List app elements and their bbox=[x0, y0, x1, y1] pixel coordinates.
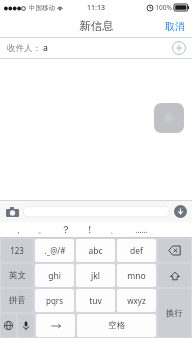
staticText: 100% bbox=[155, 3, 172, 12]
button[interactable]: mno bbox=[117, 264, 156, 287]
button[interactable]: tuv bbox=[76, 289, 115, 312]
staticText: …… bbox=[135, 224, 148, 235]
staticText: 123 bbox=[10, 245, 24, 256]
button[interactable]: Camera bbox=[5, 205, 19, 219]
staticText: 英文 bbox=[9, 270, 26, 281]
button[interactable]: …… bbox=[126, 222, 156, 237]
staticText: abc bbox=[88, 245, 103, 257]
button[interactable]: Send bbox=[174, 205, 187, 218]
button[interactable]: 拼音 bbox=[1, 289, 33, 312]
button[interactable]: Add contact bbox=[172, 41, 186, 55]
button[interactable]: 、 bbox=[102, 222, 126, 237]
button[interactable]: ._@/# bbox=[35, 239, 74, 262]
button[interactable]: 空格 bbox=[77, 314, 156, 337]
button[interactable]: ， bbox=[6, 222, 30, 237]
button[interactable]: 123 bbox=[1, 239, 33, 262]
staticText: jkl bbox=[91, 270, 100, 282]
staticText: 拼音 bbox=[9, 295, 26, 306]
button[interactable]: jkl bbox=[76, 264, 115, 287]
staticText: tuv bbox=[89, 295, 102, 307]
staticText: ._@/# bbox=[44, 245, 66, 256]
staticText: pqrs bbox=[46, 295, 63, 306]
button[interactable]: Voice input bbox=[18, 314, 34, 337]
staticText: 收件人： bbox=[7, 43, 41, 54]
staticText: 、 bbox=[110, 225, 118, 235]
staticText: 换行 bbox=[166, 308, 183, 319]
staticText: 取消 bbox=[165, 20, 185, 33]
button[interactable]: abc bbox=[76, 239, 115, 262]
staticText: 。 bbox=[38, 225, 46, 235]
button[interactable]: Next bbox=[36, 314, 75, 337]
staticText: mno bbox=[127, 270, 146, 282]
staticText: ， bbox=[14, 225, 22, 235]
staticText: ？ bbox=[61, 223, 71, 236]
button[interactable]: def bbox=[117, 239, 156, 262]
staticText: 11:13 bbox=[87, 3, 105, 13]
staticText: 中国移动 bbox=[29, 4, 55, 12]
button[interactable]: pqrs bbox=[35, 289, 74, 312]
button[interactable]: ghi bbox=[35, 264, 74, 287]
button[interactable]: Switch keyboard bbox=[1, 314, 16, 337]
staticText: def bbox=[130, 245, 143, 257]
button[interactable]: 换行 bbox=[158, 289, 191, 337]
button[interactable]: ？ bbox=[54, 222, 78, 237]
button[interactable]: 英文 bbox=[1, 264, 33, 287]
button[interactable] bbox=[154, 103, 184, 133]
staticText: ghi bbox=[48, 270, 61, 282]
button[interactable] bbox=[23, 206, 170, 217]
button[interactable]: wxyz bbox=[117, 289, 156, 312]
button[interactable]: Shift bbox=[158, 264, 191, 287]
staticText: wxyz bbox=[127, 295, 146, 306]
staticText: 空格 bbox=[108, 320, 125, 331]
staticText: 新信息 bbox=[79, 19, 114, 33]
button[interactable]: ！ bbox=[78, 222, 102, 237]
staticText: a bbox=[43, 42, 48, 54]
button[interactable]: 取消 bbox=[158, 15, 192, 37]
staticText: ！ bbox=[85, 223, 95, 236]
button[interactable]: 。 bbox=[30, 222, 54, 237]
button[interactable]: Delete bbox=[158, 239, 191, 262]
